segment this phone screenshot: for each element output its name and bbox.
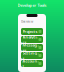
button[interactable]: Messages: [21, 44, 43, 51]
staticText: Messages: [22, 42, 38, 53]
staticText: Overview: [21, 20, 33, 23]
staticText: Projects: [22, 29, 37, 34]
button[interactable]: Analytics: [21, 36, 43, 43]
button[interactable]: Account: [21, 60, 43, 67]
staticText: Analytics: [22, 34, 37, 45]
button[interactable]: Projects: [21, 28, 43, 35]
staticText: Settings: [22, 50, 38, 61]
staticText: Developer Tools: [17, 2, 46, 8]
staticText: Account: [22, 58, 38, 69]
button[interactable]: Settings: [21, 52, 43, 59]
